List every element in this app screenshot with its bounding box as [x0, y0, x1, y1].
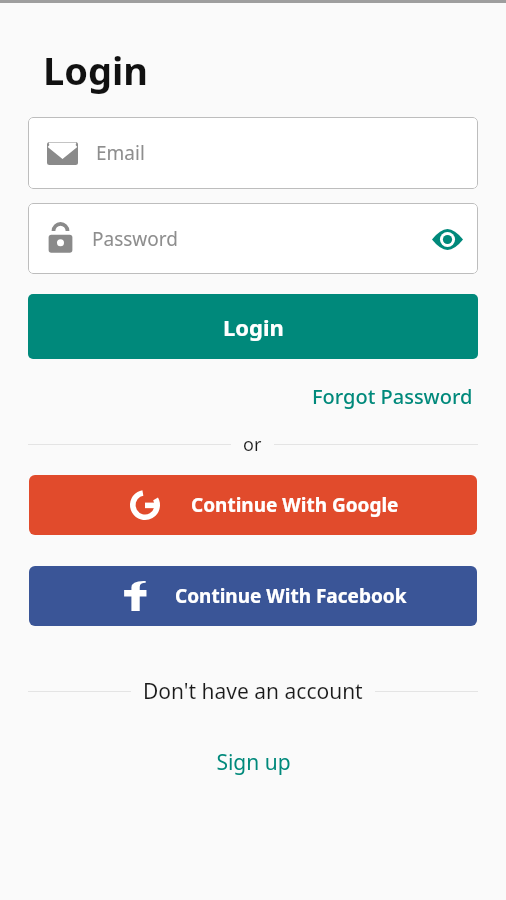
button[interactable]: Continue With Google [29, 475, 477, 535]
staticText: Continue With Facebook [175, 583, 407, 609]
button[interactable]: Sign up [204, 744, 303, 781]
button[interactable]: Email [28, 117, 478, 189]
staticText: or [243, 432, 262, 457]
button[interactable]: Forgot Password [312, 383, 506, 410]
staticText: Login [43, 44, 149, 96]
button[interactable]: Password [28, 203, 478, 274]
staticText: Forgot Password [312, 383, 473, 410]
staticText: Continue With Google [191, 492, 399, 518]
button[interactable]: Show password [423, 215, 471, 263]
staticText: Login [223, 312, 284, 342]
staticText: Password [92, 226, 178, 252]
button[interactable]: Login [28, 294, 478, 359]
staticText: Email [96, 140, 145, 166]
button[interactable]: Continue With Facebook [29, 566, 477, 626]
staticText: Don't have an account [143, 677, 363, 706]
staticText: Sign up [216, 748, 291, 777]
